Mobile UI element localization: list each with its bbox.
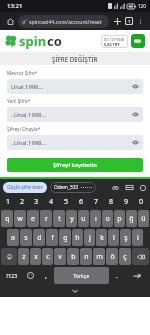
button[interactable]: e <box>27 210 39 227</box>
button[interactable]: Şifreyi kaydedin <box>7 158 143 172</box>
staticText: j <box>89 233 91 243</box>
button[interactable]: ı <box>90 210 101 227</box>
button[interactable]: ö <box>106 248 118 265</box>
staticText: Şifreyi Onayla* <box>7 126 41 133</box>
button[interactable]: w <box>14 210 26 227</box>
button[interactable]: Backspace <box>132 248 149 265</box>
button[interactable]: o <box>102 210 113 227</box>
button[interactable]: Emoji <box>23 267 38 284</box>
staticText: ŞİFRE DEĞİŞTİR <box>52 55 98 63</box>
button[interactable]: Shift <box>1 248 17 265</box>
button[interactable]: m <box>93 248 105 265</box>
staticText: r <box>45 214 48 224</box>
button[interactable]: Unal.1998... <box>7 79 143 94</box>
staticText: ..Unal.1998... <box>11 111 47 119</box>
staticText: y <box>70 214 74 224</box>
button[interactable]: g <box>59 229 71 246</box>
button[interactable]: Toolbar <box>124 182 135 193</box>
staticText: ?123 <box>6 272 18 279</box>
staticText: i <box>137 233 139 243</box>
staticText: d <box>37 233 42 243</box>
button[interactable]: u <box>78 210 89 227</box>
button[interactable]: , <box>39 267 53 284</box>
staticText: u <box>81 214 86 224</box>
button[interactable]: Türkçe <box>54 267 109 284</box>
button[interactable]: n <box>80 248 92 265</box>
button[interactable]: 3 <box>29 196 44 208</box>
button[interactable]: 2 <box>15 196 29 208</box>
button[interactable]: ?123 <box>1 267 22 284</box>
button[interactable]: ş <box>120 229 131 246</box>
staticText: f <box>51 233 54 243</box>
button[interactable]: Deposit <box>131 34 145 48</box>
staticText: spincasi44.com/account/reset <box>29 18 102 25</box>
staticText: ğ <box>129 214 134 224</box>
staticText: 0,82 TRY <box>104 42 120 47</box>
button[interactable]: Güçlü şifre öner <box>3 182 47 193</box>
button[interactable]: spincasi44.com/account/reset <box>18 15 109 28</box>
staticText: b <box>71 252 76 262</box>
staticText: t <box>58 214 61 224</box>
button[interactable]: Odem_533 <box>50 182 96 193</box>
button[interactable]: z <box>18 248 29 265</box>
staticText: ş <box>124 233 128 243</box>
staticText: 1 <box>128 19 131 24</box>
button[interactable]: Clipboard <box>110 182 121 193</box>
staticText: Odem_533 <box>54 184 79 191</box>
button[interactable]: Show password <box>130 109 141 120</box>
button[interactable]: r <box>40 210 52 227</box>
button[interactable]: Show password <box>130 81 141 92</box>
staticText: 2 <box>20 197 25 207</box>
button[interactable]: 6 <box>74 196 89 208</box>
button[interactable]: Next <box>125 267 149 284</box>
button[interactable]: 7 <box>89 196 104 208</box>
button[interactable]: ğ <box>126 210 137 227</box>
button[interactable]: New tab <box>111 15 123 27</box>
button[interactable]: 9 <box>119 196 134 208</box>
button[interactable]: More <box>138 183 147 192</box>
button[interactable]: ..Unal.1998... <box>7 107 143 122</box>
button[interactable]: y <box>66 210 77 227</box>
staticText: s <box>24 233 28 243</box>
button[interactable]: x <box>30 248 41 265</box>
button[interactable]: 1 <box>1 196 15 208</box>
button[interactable]: h <box>72 229 83 246</box>
button[interactable]: f <box>46 229 58 246</box>
staticText: co <box>47 32 62 50</box>
button[interactable]: a <box>7 229 19 246</box>
button[interactable]: s <box>20 229 32 246</box>
staticText: ..Unal.1998... <box>11 139 47 147</box>
button[interactable]: t <box>53 210 65 227</box>
button[interactable]: . <box>110 267 124 284</box>
button[interactable]: ID: 1219338 <box>101 35 128 48</box>
staticText: 120 <box>138 3 146 9</box>
staticText: 4 <box>49 197 54 207</box>
button[interactable]: 0 <box>134 196 149 208</box>
staticText: Türkçe <box>73 272 90 279</box>
button[interactable]: ü <box>138 210 149 227</box>
button[interactable]: 8 <box>104 196 119 208</box>
button[interactable]: k <box>96 229 107 246</box>
staticText: Güçlü şifre öner <box>7 184 43 191</box>
button[interactable]: Home <box>4 15 17 28</box>
button[interactable]: p <box>114 210 125 227</box>
button[interactable]: d <box>33 229 45 246</box>
button[interactable]: i <box>132 229 143 246</box>
button[interactable]: j <box>84 229 95 246</box>
staticText: 9 <box>124 197 129 207</box>
button[interactable]: ..Unal.1998... <box>7 135 143 150</box>
staticText: c <box>46 252 50 262</box>
button[interactable]: Tabs <box>123 15 135 27</box>
button[interactable]: q <box>1 210 13 227</box>
button[interactable]: v <box>54 248 66 265</box>
staticText: 8 <box>109 197 114 207</box>
button[interactable]: l <box>108 229 119 246</box>
button[interactable]: c <box>42 248 53 265</box>
button[interactable]: ç <box>119 248 131 265</box>
button[interactable]: 4 <box>44 196 59 208</box>
button[interactable]: 5 <box>59 196 74 208</box>
staticText: v <box>58 252 62 262</box>
button[interactable]: b <box>67 248 79 265</box>
button[interactable]: Show password <box>130 137 141 148</box>
button[interactable]: More options <box>135 16 146 27</box>
